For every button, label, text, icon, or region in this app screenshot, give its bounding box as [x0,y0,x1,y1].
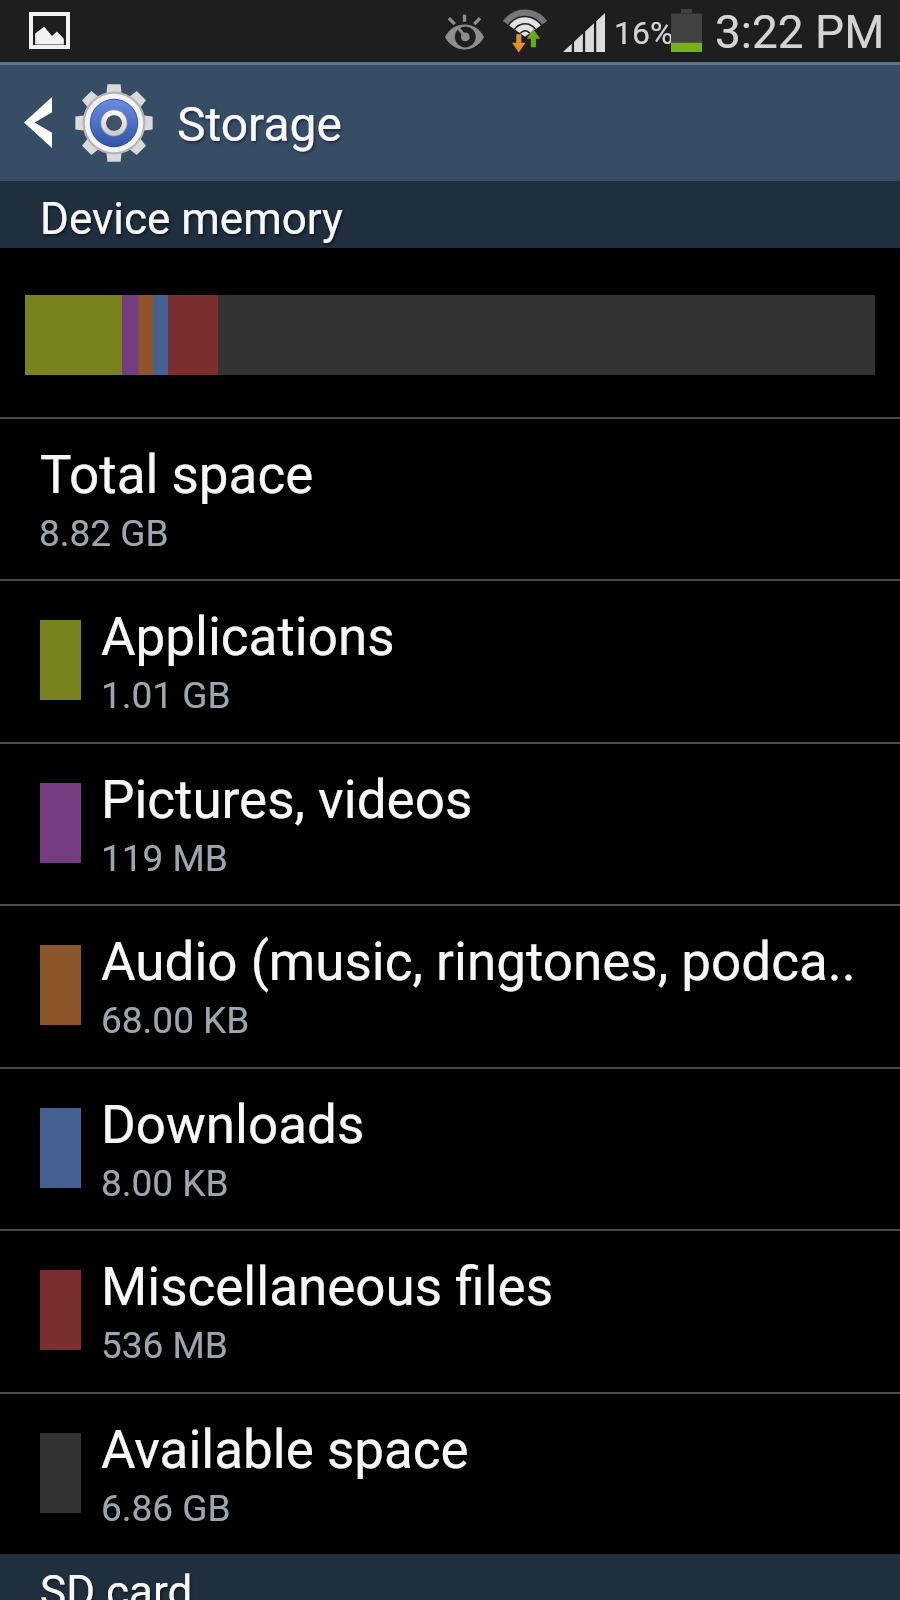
staticText: 8.00 KB [101,1162,229,1205]
staticText: Miscellaneous files [101,1256,900,1318]
button[interactable]: Audio (music, ringtones, podca.. [0,906,900,1067]
button[interactable]: Miscellaneous files [0,1231,900,1392]
staticText: 1.01 GB [101,674,231,717]
staticText: 536 MB [101,1324,228,1367]
button[interactable]: Pictures, videos [0,744,900,904]
button[interactable]: Applications [0,581,900,742]
staticText: Total space [40,444,314,506]
staticText: Device memory [40,193,343,245]
button[interactable]: Navigate up [0,65,68,181]
button[interactable]: Downloads [0,1069,900,1229]
staticText: SD card [40,1566,193,1600]
staticText: Available space [101,1419,900,1481]
staticText: Applications [101,606,900,668]
button[interactable]: Total space [0,419,900,579]
button[interactable]: Available space [0,1394,900,1554]
staticText: 8.82 GB [39,512,169,555]
staticText: Downloads [101,1094,900,1156]
staticText: Pictures, videos [101,769,900,831]
staticText: 16% [614,14,674,52]
staticText: 68.00 KB [101,999,250,1042]
staticText: Audio (music, ringtones, podca.. [101,931,900,993]
staticText: 6.86 GB [101,1487,231,1530]
staticText: 119 MB [101,837,228,880]
staticText: 3:22 PM [715,5,885,59]
staticText: Storage [177,96,342,152]
